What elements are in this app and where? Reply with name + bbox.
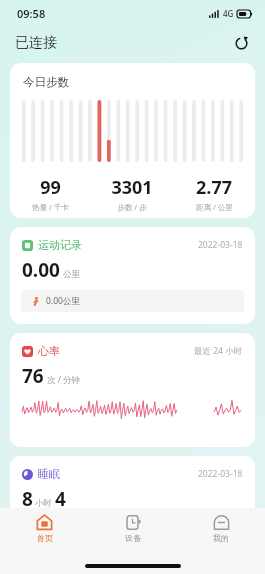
button[interactable]: 心率 <box>10 333 255 447</box>
staticText: 99 <box>40 175 61 200</box>
staticText: 热量 / 千卡 <box>32 202 69 212</box>
button[interactable]: 首页 <box>0 514 89 552</box>
staticText: 首页 <box>37 533 53 543</box>
staticText: 心率 <box>38 344 60 358</box>
staticText: 我的 <box>213 533 229 543</box>
staticText: 公里 <box>63 269 80 280</box>
button[interactable]: 运动记录 <box>10 227 255 324</box>
button[interactable]: 0.00公里 <box>21 290 244 312</box>
staticText: 今日步数 <box>23 75 69 89</box>
staticText: 0.00公里 <box>46 295 80 307</box>
staticText: 2022-03-18 <box>198 468 243 480</box>
staticText: 次 / 分钟 <box>47 374 81 386</box>
staticText: 运动记录 <box>38 238 82 252</box>
staticText: 0.00 <box>22 257 60 283</box>
staticText: 09:58 <box>17 6 46 21</box>
button[interactable]: 设备 <box>89 514 177 552</box>
staticText: 4 <box>55 486 66 512</box>
staticText: 8 <box>22 486 33 512</box>
staticText: 距离 / 公里 <box>196 202 233 212</box>
button[interactable]: 睡眠 <box>10 456 255 526</box>
staticText: 4G <box>223 8 234 19</box>
staticText: 睡眠 <box>38 467 60 481</box>
staticText: 2022-03-18 <box>198 239 243 251</box>
staticText: 设备 <box>125 533 141 543</box>
staticText: 小时 <box>35 498 52 509</box>
staticText: 3301 <box>111 175 153 200</box>
staticText: 76 <box>22 363 44 389</box>
staticText: 已连接 <box>15 34 57 52</box>
button[interactable]: 今日步数 <box>10 63 255 218</box>
staticText: 最近 24 小时 <box>194 345 243 357</box>
staticText: 步数 / 步 <box>117 202 147 212</box>
button[interactable]: 我的 <box>177 514 265 552</box>
button[interactable]: Refresh <box>229 31 253 55</box>
staticText: 2.77 <box>196 175 232 200</box>
